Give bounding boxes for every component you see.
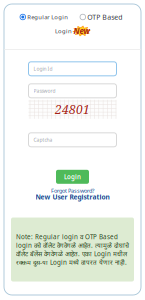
staticText: 24801	[55, 101, 90, 117]
button[interactable]: Password	[28, 84, 116, 98]
button[interactable]: Forgot Password?	[51, 187, 94, 194]
button[interactable]: Regular Login	[20, 13, 70, 21]
button[interactable]: OTP Based	[80, 12, 125, 22]
staticText: Password	[33, 87, 55, 94]
staticText: Note: Regular login व OTP Based login वच…	[16, 232, 129, 266]
staticText: New User Registration	[35, 192, 109, 201]
button[interactable]: Login	[56, 170, 89, 184]
staticText: New	[73, 26, 89, 36]
staticText: Login Id	[33, 65, 52, 72]
button[interactable]: Captcha	[28, 133, 116, 147]
staticText: Login	[64, 173, 81, 181]
staticText: Forgot Password?	[51, 187, 94, 194]
staticText: Login	[55, 27, 72, 35]
staticText: Captcha	[33, 136, 52, 143]
button[interactable]: Login Id	[28, 62, 116, 76]
staticText: Regular Login	[27, 13, 68, 21]
staticText: OTP Based	[87, 12, 122, 22]
button[interactable]: New User Registration	[35, 192, 109, 201]
